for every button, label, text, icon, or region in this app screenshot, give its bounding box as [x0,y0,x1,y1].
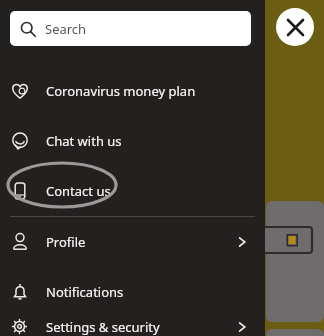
staticText: Chat with us [46,132,122,150]
staticText: Search [45,20,87,38]
button[interactable]: Notifications [0,267,265,317]
button[interactable]: Contact us [0,166,265,216]
staticText: Contact us [46,182,111,200]
staticText: Coronavirus money plan [46,82,196,100]
button[interactable]: Profile [0,217,265,267]
staticText: Profile [46,233,86,251]
button[interactable]: Coronavirus money plan [0,66,265,116]
staticText: Notifications [46,283,124,301]
button[interactable]: Chat with us [0,116,265,166]
button[interactable]: Settings & security [0,317,265,336]
button[interactable]: Search [10,11,251,46]
button[interactable]: Close [276,8,314,46]
staticText: Settings & security [46,318,160,336]
